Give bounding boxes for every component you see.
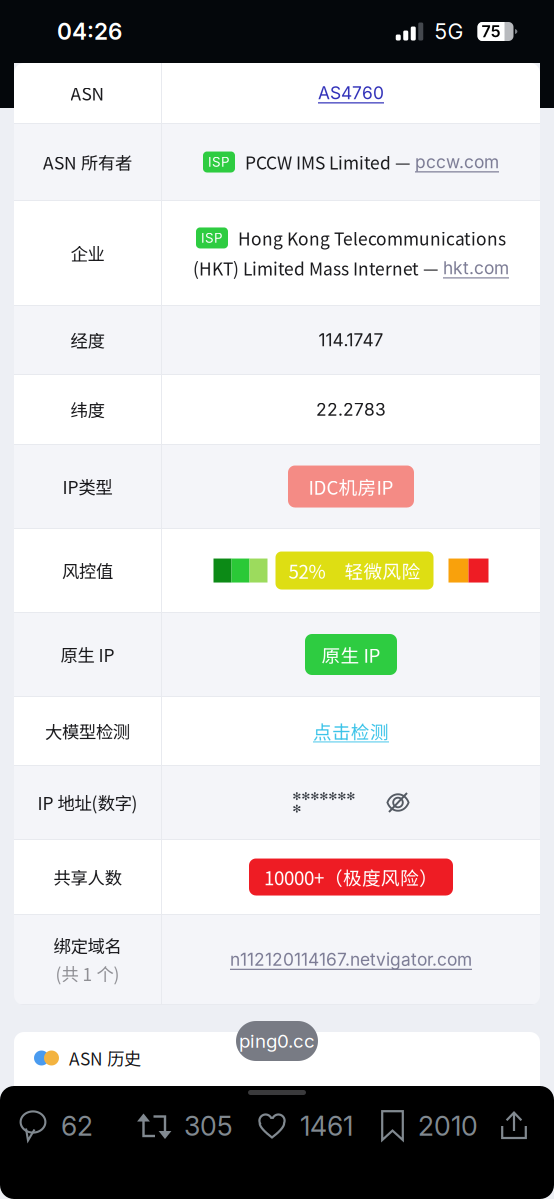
staticText: ISP xyxy=(208,154,230,170)
staticText: 纬度 xyxy=(70,397,104,422)
staticText: 75 xyxy=(481,22,500,41)
staticText: ASN xyxy=(70,80,104,106)
staticText: IDC机房IP xyxy=(308,473,393,500)
button[interactable]: 原生 IP xyxy=(305,634,397,675)
staticText: 10000+（极度风险） xyxy=(264,863,438,890)
button[interactable]: n112120114167.netvigator.com xyxy=(230,949,472,970)
staticText: 114.1747 xyxy=(318,329,383,350)
staticText: ISP xyxy=(201,230,223,246)
staticText: 2010 xyxy=(418,1110,478,1142)
staticText: 原生 IP xyxy=(321,641,380,668)
staticText: 风控值 xyxy=(62,558,113,583)
staticText: Hong Kong Telecommunications xyxy=(238,225,506,250)
staticText: 原生 IP xyxy=(60,642,114,667)
staticText: 52% 轻微风险 xyxy=(288,557,420,584)
staticText: ✻✻✻✻✻✻✻✻ xyxy=(292,790,355,815)
button[interactable]: 10000+（极度风险） xyxy=(249,858,453,895)
staticText: IP 地址(数字) xyxy=(37,790,137,815)
button[interactable]: 62 xyxy=(18,1109,93,1142)
button[interactable]: 2010 xyxy=(381,1110,478,1142)
button[interactable]: Share xyxy=(501,1111,527,1141)
staticText: 62 xyxy=(61,1110,93,1142)
staticText: ASN 历史 xyxy=(69,1045,141,1071)
button[interactable]: Show IP address xyxy=(386,791,410,813)
button[interactable]: AS4760 xyxy=(318,82,384,103)
button[interactable]: 305 xyxy=(138,1110,233,1142)
staticText: n112120114167.netvigator.com xyxy=(230,949,472,970)
button[interactable]: hkt.com xyxy=(438,258,509,279)
staticText: (共 1 个) xyxy=(55,961,119,986)
button[interactable]: ping0.cc xyxy=(236,1021,318,1061)
staticText: 企业 xyxy=(70,240,104,266)
staticText: ping0.cc xyxy=(239,1030,315,1052)
staticText: PCCW IMS Limited — xyxy=(245,149,410,175)
button[interactable]: 点击检测 xyxy=(313,717,389,744)
button[interactable]: pccw.com xyxy=(410,151,499,172)
staticText: AS4760 xyxy=(318,82,384,103)
staticText: 经度 xyxy=(70,327,104,353)
staticText: 305 xyxy=(184,1110,233,1142)
staticText: (HKT) Limited Mass Internet — xyxy=(193,255,438,281)
staticText: 大模型检测 xyxy=(45,718,130,744)
staticText: 共享人数 xyxy=(53,864,121,890)
staticText: 点击检测 xyxy=(313,717,389,744)
staticText: 5G xyxy=(434,19,463,44)
staticText: 绑定域名 xyxy=(53,933,121,958)
button[interactable]: IDC机房IP xyxy=(288,465,414,507)
staticText: hkt.com xyxy=(443,258,509,279)
staticText: 1461 xyxy=(300,1110,353,1142)
staticText: 04:26 xyxy=(57,18,122,45)
staticText: ASN 所有者 xyxy=(43,149,132,175)
staticText: IP类型 xyxy=(62,474,112,499)
staticText: pccw.com xyxy=(415,151,499,172)
staticText: 22.2783 xyxy=(316,399,386,420)
button[interactable]: 1461 xyxy=(258,1110,353,1142)
